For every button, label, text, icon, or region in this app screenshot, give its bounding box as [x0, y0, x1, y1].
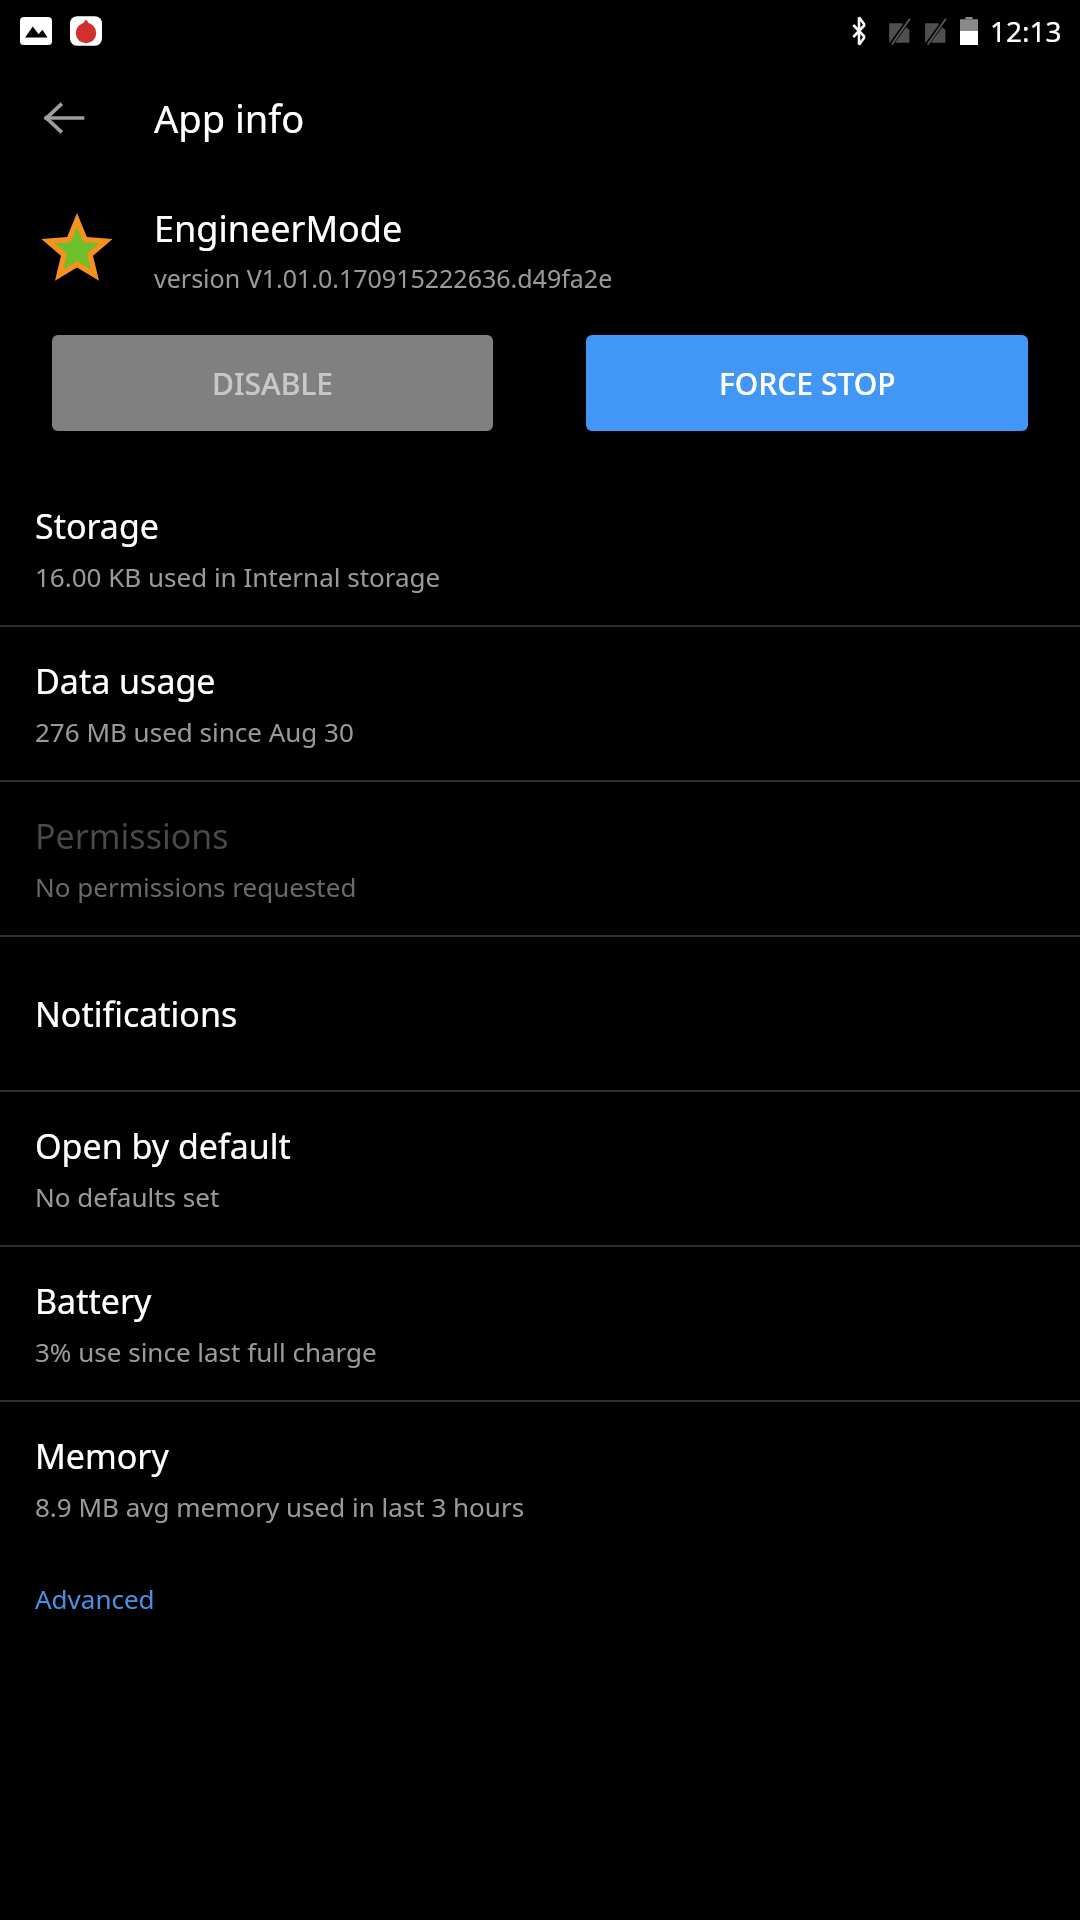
staticText: Storage — [35, 503, 160, 549]
button[interactable]: Advanced — [0, 1581, 1080, 1621]
staticText: Memory — [35, 1433, 169, 1479]
staticText: Open by default — [35, 1123, 291, 1169]
staticText: FORCE STOP — [719, 363, 896, 404]
staticText: Data usage — [35, 658, 216, 704]
button[interactable]: Data usage — [0, 627, 1080, 780]
staticText: EngineerMode — [154, 204, 403, 253]
button[interactable]: Back — [28, 82, 100, 154]
staticText: 276 MB used since Aug 30 — [35, 714, 354, 749]
staticText: 12:13 — [990, 12, 1062, 50]
staticText: 8.9 MB avg memory used in last 3 hours — [35, 1489, 525, 1524]
button[interactable]: DISABLE — [52, 335, 493, 431]
button[interactable]: Battery — [0, 1247, 1080, 1400]
staticText: version V1.01.0.170915222636.d49fa2e — [154, 261, 613, 295]
staticText: 3% use since last full charge — [35, 1334, 377, 1369]
button[interactable]: Permissions — [0, 782, 1080, 935]
staticText: No permissions requested — [35, 869, 357, 904]
staticText: No defaults set — [35, 1179, 220, 1214]
button[interactable]: Notifications — [0, 937, 1080, 1090]
staticText: 16.00 KB used in Internal storage — [35, 559, 441, 594]
staticText: App info — [154, 92, 305, 144]
staticText: Notifications — [35, 991, 238, 1037]
staticText: Advanced — [35, 1581, 155, 1616]
staticText: DISABLE — [212, 363, 334, 404]
button[interactable]: Open by default — [0, 1092, 1080, 1245]
button[interactable]: FORCE STOP — [586, 335, 1028, 431]
button[interactable]: Storage — [0, 472, 1080, 625]
staticText: Battery — [35, 1278, 152, 1324]
button[interactable]: Memory — [0, 1402, 1080, 1555]
staticText: Permissions — [35, 813, 229, 859]
